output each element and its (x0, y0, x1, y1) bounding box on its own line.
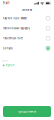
button[interactable]: Продолжить (3, 106, 51, 117)
staticText: 9:41 (3, 1, 10, 5)
button[interactable]: Картой при заказе (0, 13, 54, 23)
staticText: Купон (6, 63, 15, 67)
staticText: Бонусы (2, 46, 12, 50)
staticText: Картой при заказе (2, 16, 26, 20)
staticText: Расчётный счёт (2, 36, 22, 40)
button[interactable]: Наличными курьеру (0, 23, 54, 33)
staticText: Продолжить (17, 110, 36, 113)
button[interactable]: Бонусы (0, 43, 54, 53)
staticText: Другое (2, 60, 8, 62)
staticText: Оплата (21, 8, 32, 11)
staticText: Наличными курьеру (2, 26, 29, 30)
button[interactable]: Купон (2, 63, 15, 67)
button[interactable]: Расчётный счёт (0, 33, 54, 43)
